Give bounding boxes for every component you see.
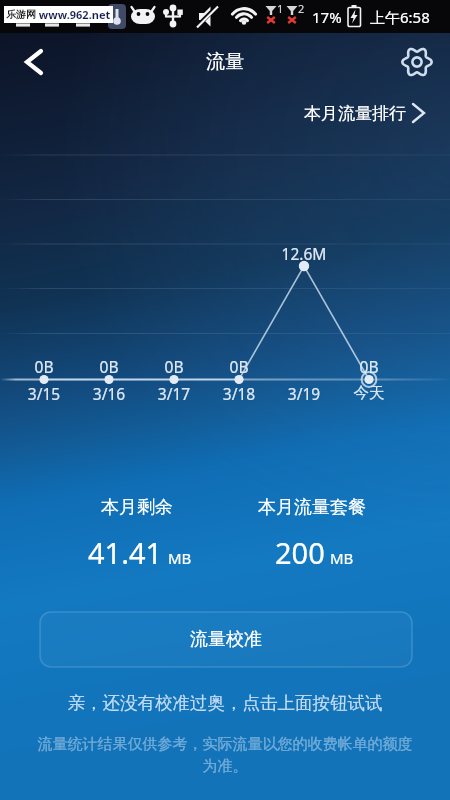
staticText: 0B	[14, 356, 74, 377]
staticText: 流量统计结果仅供参考，实际流量以您的收费帐单的额度为准。	[35, 735, 415, 775]
staticText: 今天	[339, 383, 399, 403]
staticText: 上午6:58	[370, 7, 430, 27]
staticText: 亲，还没有校准过奥，点击上面按钮试试	[0, 692, 450, 714]
staticText: 流量	[0, 50, 450, 74]
button[interactable]: 流量校准	[40, 612, 412, 667]
staticText: 流量校准	[190, 628, 262, 651]
staticText: 0B	[339, 356, 399, 377]
staticText: 41.41	[88, 533, 163, 572]
staticText: 200	[275, 533, 325, 572]
button[interactable]: Settings	[389, 34, 445, 90]
staticText: MB	[168, 548, 192, 568]
staticText: 1	[277, 1, 284, 16]
button[interactable]: Back	[6, 34, 62, 90]
staticText: 3/16	[79, 383, 139, 404]
staticText: www.962.net	[36, 7, 111, 22]
staticText: 乐游网	[6, 8, 36, 21]
staticText: 2	[298, 1, 305, 16]
staticText: 3/17	[144, 383, 204, 404]
staticText: 12.6M	[274, 243, 334, 264]
staticText: 0B	[209, 356, 269, 377]
button[interactable]: 本月流量排行	[296, 98, 438, 128]
staticText: 本月流量套餐	[258, 496, 366, 519]
staticText: 3/18	[209, 383, 269, 404]
staticText: MB	[330, 548, 354, 568]
staticText: 0B	[144, 356, 204, 377]
staticText: 0B	[79, 356, 139, 377]
staticText: 本月流量排行	[304, 103, 406, 124]
staticText: 17%	[312, 7, 342, 27]
staticText: 3/15	[14, 383, 74, 404]
staticText: 3/19	[274, 383, 334, 404]
staticText: 本月剩余	[101, 496, 173, 519]
